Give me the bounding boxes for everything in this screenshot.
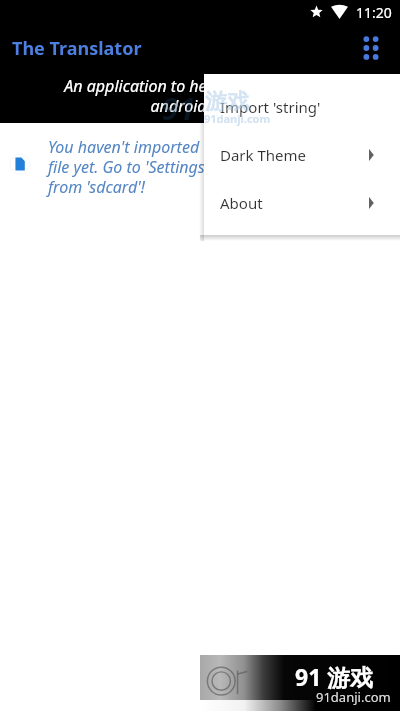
staticText: About [220, 193, 263, 213]
button[interactable]: You haven't imported any 'string' file y… [0, 136, 400, 197]
staticText: Import 'string' [220, 97, 321, 117]
staticText: The Translator [12, 36, 142, 61]
staticText: You haven't imported any 'string' file y… [48, 136, 298, 197]
staticText: Dark Theme [220, 145, 307, 165]
button[interactable]: Dark Theme [204, 131, 400, 179]
staticText: 91danji.com [204, 111, 271, 126]
staticText: An application to help you to translate … [0, 75, 400, 116]
staticText: 11:20 [356, 3, 392, 22]
button[interactable]: About [204, 179, 400, 227]
button[interactable]: More options [352, 24, 400, 72]
staticText: 91 游戏 [295, 661, 374, 692]
button[interactable]: Import 'string' [204, 83, 400, 131]
staticText: 游戏 [205, 88, 249, 116]
staticText: 91 [162, 88, 196, 129]
staticText: 91danji.com [316, 688, 391, 706]
